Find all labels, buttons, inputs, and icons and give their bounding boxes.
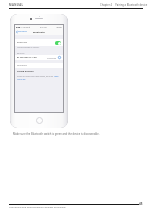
staticText: Chapter 4 Pairing a Bluetooth device	[100, 3, 148, 7]
staticText: DEVICES	[17, 52, 25, 54]
staticText: Make sure the Bluetooth switch is green …	[13, 132, 100, 136]
staticText: To pair an Apple Watch with iPhone, go t…	[17, 75, 54, 77]
staticText: Apple	[54, 75, 59, 77]
other: More info	[58, 56, 61, 59]
button[interactable]: SoundLink	[15, 63, 63, 68]
staticText: Watch app.	[17, 78, 26, 80]
staticText: Now discoverable as “iPhone”.	[17, 46, 40, 48]
staticText: 9:41 AM	[40, 26, 47, 28]
staticText: SoundLink	[17, 64, 27, 67]
button[interactable]: Bluetooth	[15, 39, 63, 46]
staticText: ●●●○○ Carrier ⬆	[16, 26, 31, 28]
button[interactable]: Settings	[15, 29, 28, 34]
staticText: Bluetooth	[17, 41, 28, 44]
staticText: Settings	[18, 30, 27, 33]
staticText: Bluetooth	[33, 30, 45, 33]
staticText: BT SPEAKER A2 14B3	[17, 56, 37, 59]
staticText: 45	[139, 202, 143, 206]
staticText: Connected	[47, 57, 57, 59]
button[interactable]: BT SPEAKER A2 14B3	[15, 55, 63, 60]
staticText: 100% ▮	[56, 26, 62, 28]
staticText: Connecting and using Bluetooth wireless …	[9, 206, 66, 209]
staticText: MANUAL	[9, 3, 24, 7]
staticText: OTHER DEVICES	[17, 70, 34, 73]
